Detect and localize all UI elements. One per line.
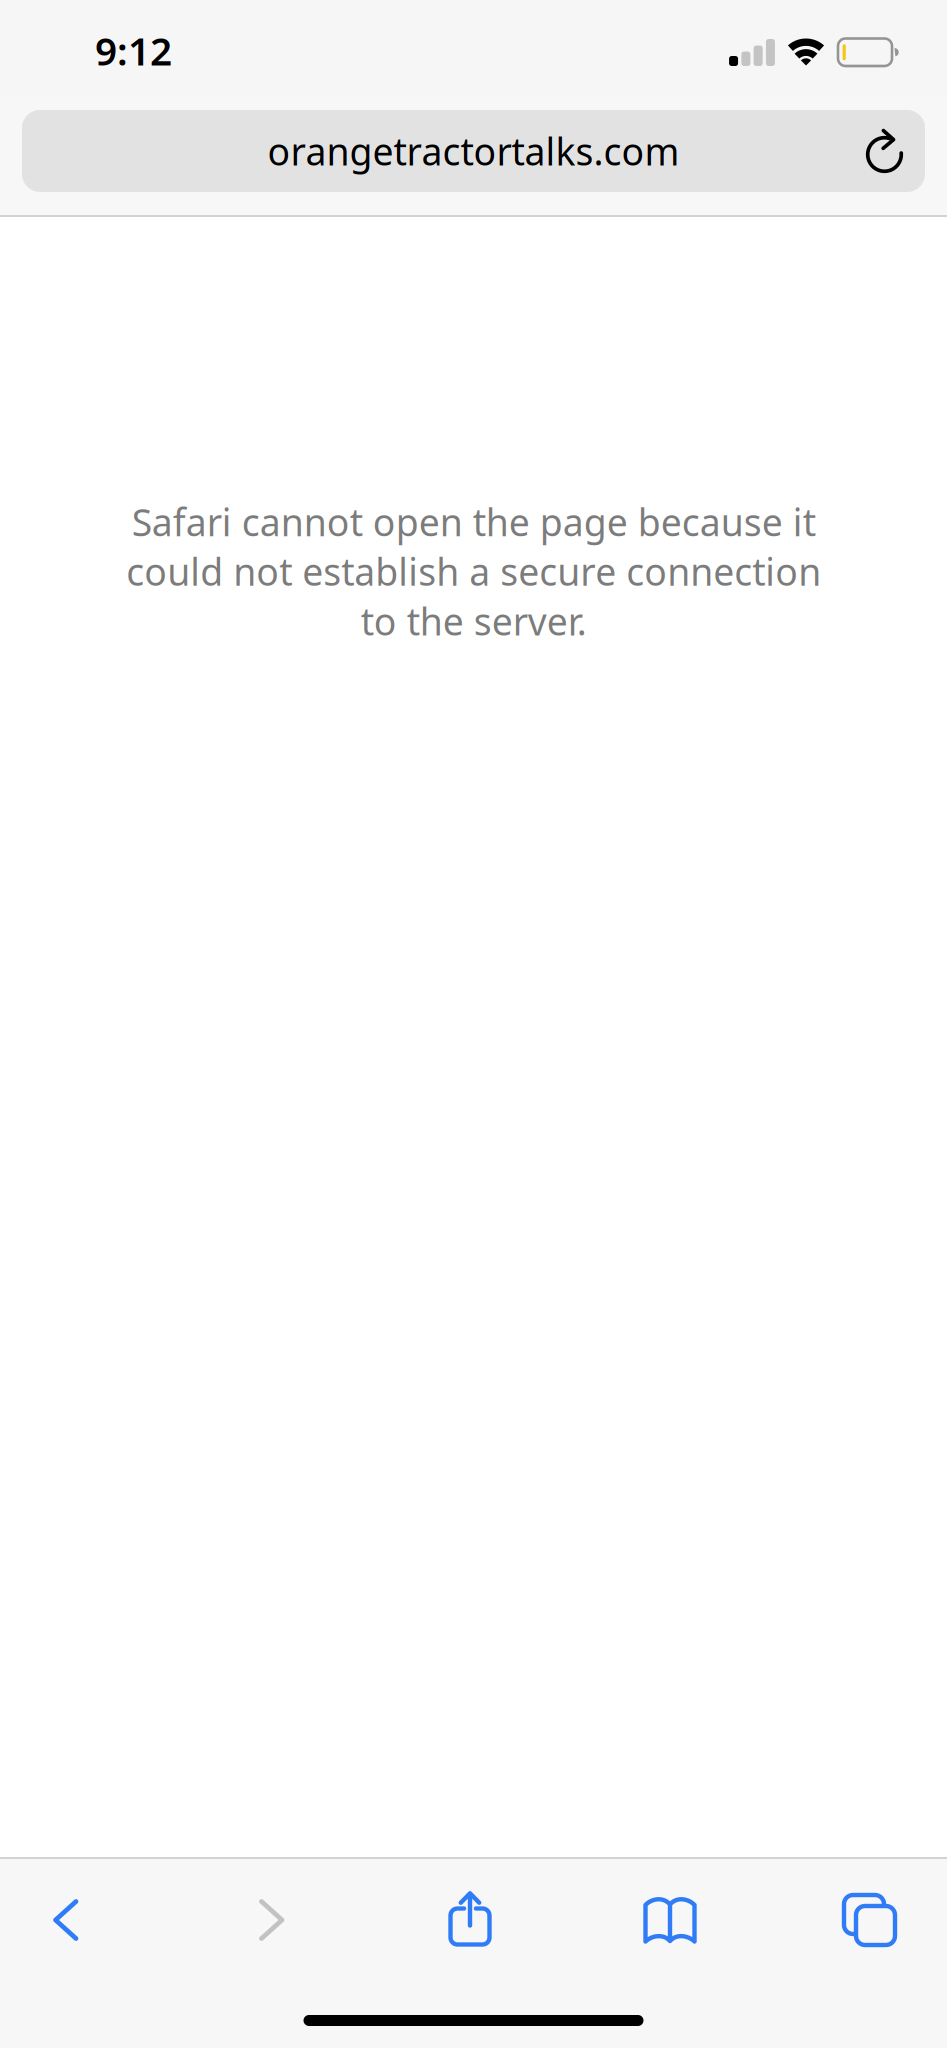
button[interactable]: Forward (132, 1873, 412, 1967)
staticText: orangetractortalks.com (267, 126, 679, 176)
button[interactable]: Bookmarks (528, 1873, 812, 1967)
button[interactable]: orangetractortalks.com (22, 110, 925, 192)
button[interactable]: Back (0, 1873, 132, 1967)
staticText: 9:12 (95, 25, 172, 76)
staticText: Safari cannot open the page because it c… (126, 497, 821, 646)
button[interactable]: Share (412, 1873, 528, 1967)
button[interactable]: Tabs (812, 1873, 928, 1967)
